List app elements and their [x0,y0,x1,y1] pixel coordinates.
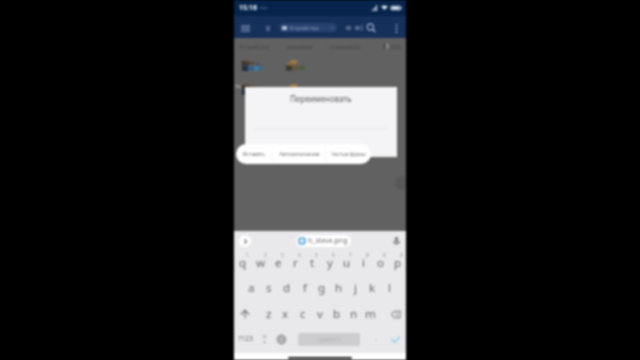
button[interactable]: Add [395,176,409,190]
staticText: 45% [390,43,401,50]
staticText: Вставить [243,151,265,158]
button[interactable]: s [260,275,278,301]
button[interactable]: Comma [258,326,270,352]
button[interactable]: b [328,301,345,327]
staticText: Частые фразы [331,151,366,158]
staticText: 15:18 [239,3,257,13]
button[interactable]: c [294,301,311,327]
staticText: 2 [264,252,267,258]
button[interactable]: Voice input [390,234,403,247]
staticText: m [365,306,376,322]
button[interactable]: 7 [338,250,355,276]
staticText: Переименовать [290,93,352,104]
staticText: o [377,255,384,271]
staticText: a [248,280,255,296]
staticText: Устройства [239,43,270,50]
button[interactable]: Home [262,22,274,34]
button[interactable]: Backspace [387,306,403,322]
staticText: w [256,255,266,271]
staticText: s [266,280,272,296]
staticText: 3 [281,252,284,258]
button[interactable]: Автозаполнение [273,144,325,164]
button[interactable]: d [278,275,296,301]
staticText: h [335,280,343,296]
button[interactable]: View mode [352,23,362,33]
staticText: 9 [383,252,386,258]
staticText: ?123 [238,334,254,344]
staticText: 0 [400,252,403,258]
button[interactable]: More options [389,21,403,35]
staticText: f [303,280,307,296]
button[interactable]: Устройства [279,23,337,32]
staticText: t [310,255,315,271]
button[interactable]: l [381,275,398,301]
staticText: Ав [235,83,242,90]
staticText: z [266,306,272,322]
staticText: p [394,255,402,271]
button[interactable]: 2 [252,250,270,276]
staticText: v [317,306,323,322]
button[interactable]: Search [364,21,378,35]
button[interactable]: Filter [358,24,366,32]
staticText: d [283,280,291,296]
button[interactable]: g [313,275,330,301]
staticText: n [350,306,358,322]
button[interactable]: v [311,301,328,327]
staticText: 5 [315,252,318,258]
staticText: 1 [246,252,249,258]
button[interactable]: j [347,275,364,301]
button[interactable]: 9 [372,250,389,276]
staticText: 7 [349,252,352,258]
button[interactable]: Menu [237,20,253,36]
staticText: 8 [366,252,369,258]
staticText: j [354,280,357,296]
button[interactable]: 5 [304,250,321,276]
staticText: QWERTY [317,336,342,344]
button[interactable]: Expand suggestions [239,235,251,247]
staticText: emulated [287,43,313,50]
staticText: r [293,255,298,271]
button[interactable]: h_steve.png [296,235,351,247]
button[interactable]: Shift [237,306,253,322]
button[interactable]: Change language [273,331,289,347]
staticText: c [300,306,306,322]
staticText: u [343,255,351,271]
staticText: i [362,255,365,271]
staticText: 4 [298,252,301,258]
button[interactable]: 1 [234,250,252,276]
button[interactable]: ?123 [236,326,256,352]
staticText: g [318,280,326,296]
staticText: 6 [332,252,335,258]
staticText: y [327,255,333,271]
staticText: e [275,255,282,271]
staticText: h_steve.png [308,236,348,246]
button[interactable]: x [277,301,294,327]
button[interactable]: z [261,301,277,327]
button[interactable]: a [242,275,260,301]
staticText: q [239,255,247,271]
button[interactable]: 6 [321,250,338,276]
staticText: l [388,280,391,296]
staticText: screenshots [329,43,361,50]
button[interactable]: Частые фразы [326,144,371,164]
button[interactable]: k [364,275,381,301]
staticText: Автозаполнение [279,151,320,158]
button[interactable]: Select all [343,23,353,33]
button[interactable]: h [330,275,347,301]
button[interactable]: 4 [287,250,304,276]
button[interactable]: Вставить [236,144,272,164]
button[interactable]: 8 [355,250,372,276]
button[interactable]: n [345,301,362,327]
button[interactable]: m [362,301,379,327]
button[interactable]: QWERTY [298,333,360,346]
button[interactable]: Done [387,331,403,347]
button[interactable]: 3 [270,250,287,276]
staticText: k [369,280,376,296]
staticText: x [282,306,289,322]
staticText: Устройства [289,24,319,31]
button[interactable]: 0 [389,250,406,276]
button[interactable]: f [296,275,313,301]
